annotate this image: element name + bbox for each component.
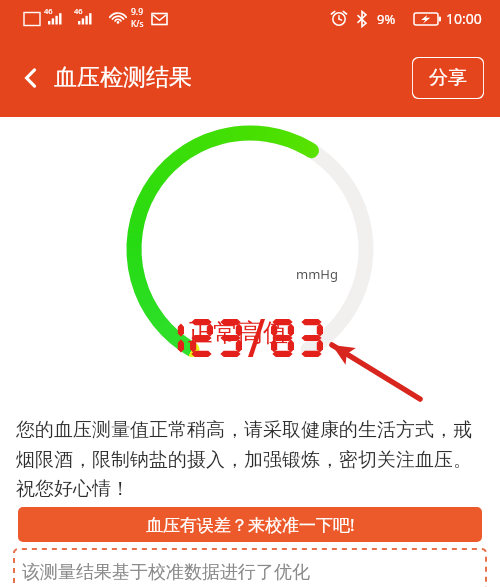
staticText: 血压有误差？来校准一下吧! — [146, 513, 355, 536]
staticText: 您的血压测量值正常稍高，请采取健康的生活方式，戒烟限酒，限制钠盐的摄入，加强锻炼… — [16, 418, 486, 500]
staticText: 9.9 — [131, 6, 144, 18]
staticText: 血压检测结果 — [54, 63, 192, 92]
button[interactable]: 分享 — [412, 57, 484, 99]
staticText: 46 — [44, 6, 53, 16]
staticText: mmHg — [296, 265, 338, 283]
staticText: K/s — [131, 18, 144, 30]
staticText: 该测量结果基于校准数据进行了优化 — [22, 561, 310, 584]
button[interactable]: 血压有误差？来校准一下吧! — [18, 507, 482, 542]
staticText: 分享 — [429, 66, 467, 90]
button[interactable]: Back — [14, 61, 48, 95]
staticText: 10:00 — [446, 9, 482, 28]
staticText: 9% — [377, 10, 396, 28]
staticText: 正常高值 — [188, 317, 288, 348]
staticText: 46 — [74, 6, 83, 16]
